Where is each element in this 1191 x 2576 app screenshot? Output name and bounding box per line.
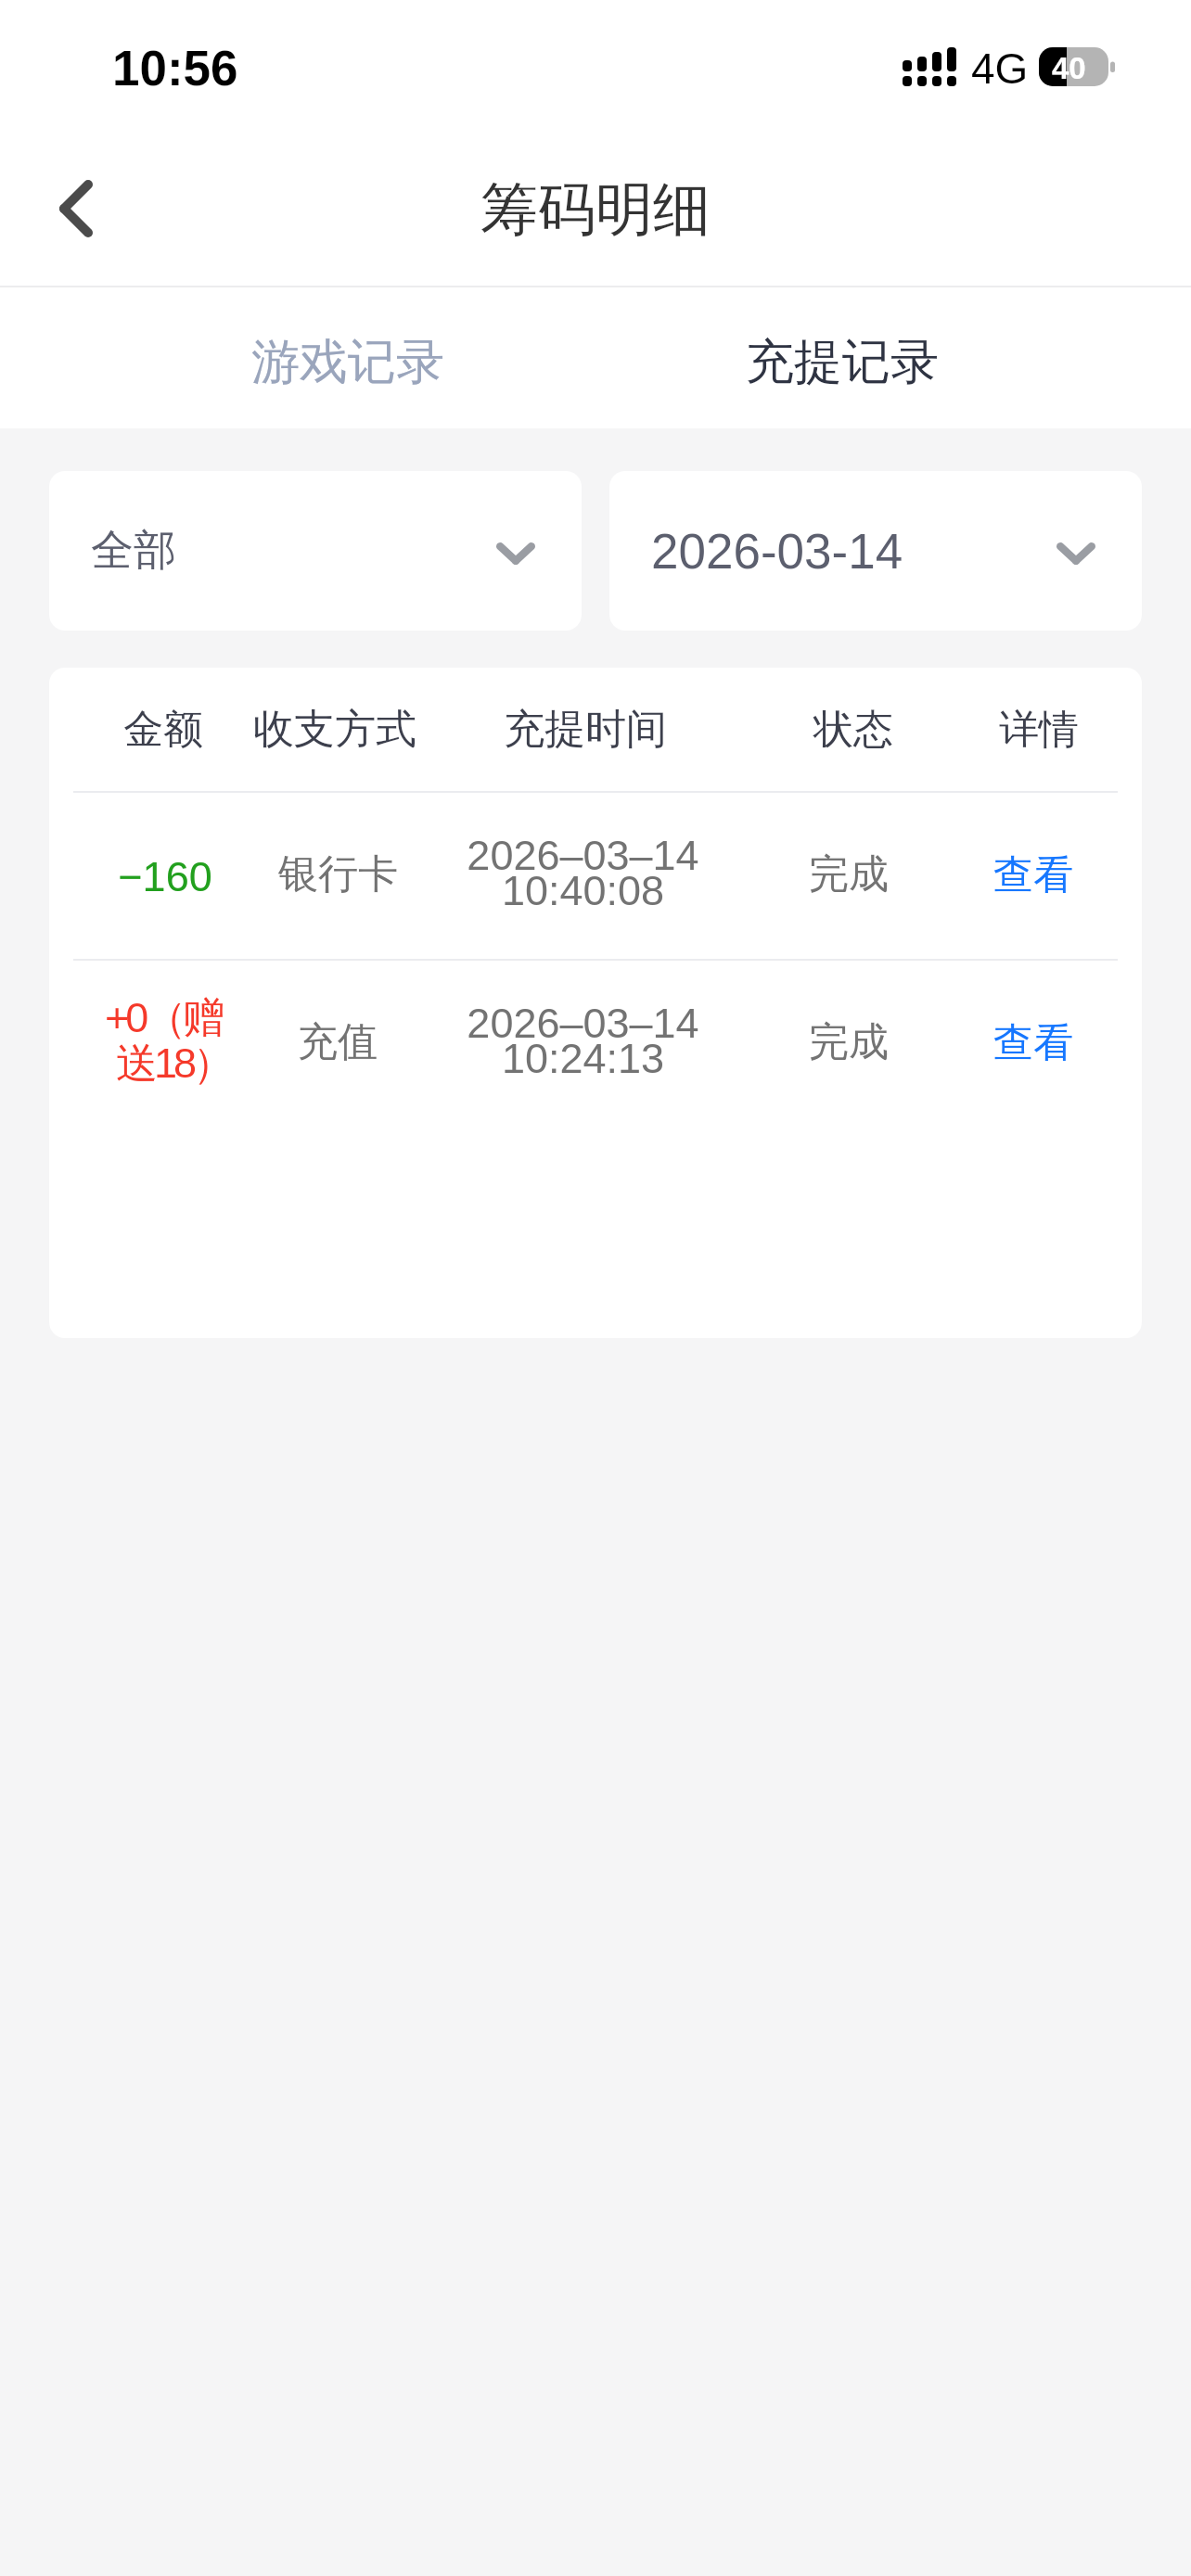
button[interactable]: 充提记录	[666, 294, 1018, 431]
button[interactable]: 查看	[959, 793, 1108, 959]
staticText: 状态	[813, 705, 893, 755]
staticText: 2026-03-14	[651, 524, 903, 579]
staticText: 充提时间	[504, 704, 667, 755]
staticText: 查看	[993, 1018, 1073, 1068]
button[interactable]: 全部	[49, 471, 582, 631]
staticText: 充提记录	[746, 332, 939, 393]
staticText: 完成	[809, 1017, 889, 1067]
staticText: 10:56	[112, 41, 238, 96]
button[interactable]: 查看	[959, 961, 1108, 1127]
staticText: 银行卡	[278, 849, 398, 899]
staticText: 4G	[971, 45, 1029, 92]
staticText: 收支方式	[253, 704, 416, 755]
button[interactable]: Back	[20, 153, 132, 264]
staticText: 全部	[91, 524, 176, 578]
staticText: 完成	[809, 849, 889, 899]
staticText: −160	[118, 853, 212, 899]
button[interactable]: 游戏记录	[172, 294, 524, 431]
staticText: 充值	[298, 1017, 378, 1067]
staticText: 查看	[993, 850, 1073, 900]
staticText: 游戏记录	[251, 332, 444, 393]
staticText: 筹码明细	[480, 173, 711, 246]
staticText: 40	[1052, 51, 1086, 85]
button[interactable]: 2026-03-14	[609, 471, 1142, 631]
staticText: 2026–03–14 10:24:13	[467, 1000, 699, 1082]
staticText: 金额	[123, 705, 203, 755]
staticText: 详情	[999, 705, 1079, 755]
staticText: +0（赠	[105, 992, 222, 1045]
staticText: 2026–03–14 10:40:08	[467, 832, 699, 914]
staticText: 送18）	[116, 1038, 232, 1090]
